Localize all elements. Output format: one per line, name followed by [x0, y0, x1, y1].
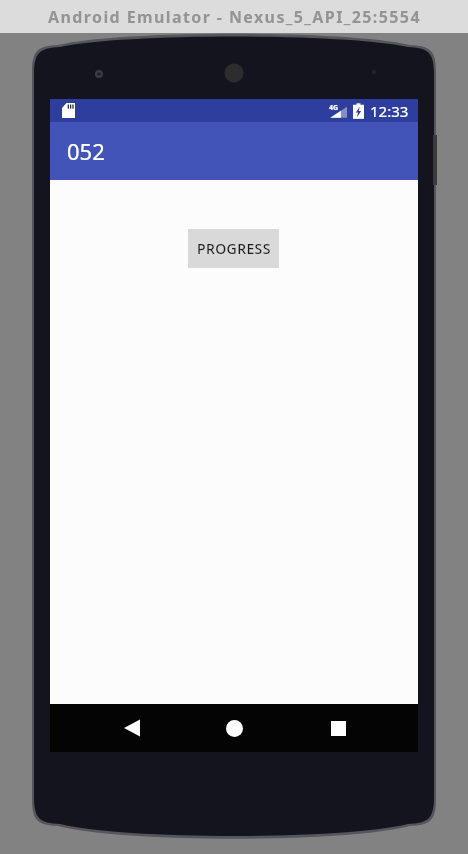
button[interactable]: Home	[219, 704, 249, 752]
staticText: Android Emulator - Nexus_5_API_25:5554	[48, 6, 421, 28]
button[interactable]: PROGRESS	[188, 229, 279, 268]
button[interactable]: Back	[117, 704, 147, 752]
staticText: 4G	[329, 103, 339, 113]
staticText: 12:33	[370, 101, 409, 121]
staticText: PROGRESS	[197, 239, 271, 258]
staticText: 052	[67, 136, 105, 166]
button[interactable]: Recent apps	[323, 704, 353, 752]
